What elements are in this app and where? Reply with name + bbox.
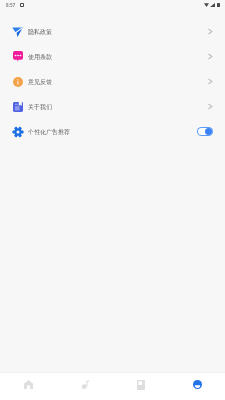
button[interactable]: 关于我们 (0, 94, 225, 119)
button[interactable]: 我的 (169, 373, 225, 400)
button[interactable]: 个性化广告推荐 (0, 119, 225, 144)
staticText: 意见反馈 (28, 78, 52, 86)
button[interactable]: 意见反馈 (0, 69, 225, 94)
button[interactable]: 书架 (113, 373, 169, 400)
button[interactable]: 隐私政策 (0, 19, 225, 44)
staticText: 个性化广告推荐 (28, 128, 70, 136)
staticText: 8:57 (6, 2, 16, 8)
staticText: 关于我们 (28, 103, 52, 111)
button[interactable]: 首页 (0, 373, 57, 400)
staticText: 隐私政策 (28, 28, 52, 36)
button[interactable]: 音乐 (57, 373, 113, 400)
staticText: 使用条款 (28, 53, 52, 61)
button[interactable]: 使用条款 (0, 44, 225, 69)
button[interactable]: 个性化广告推荐开关 (197, 127, 213, 136)
